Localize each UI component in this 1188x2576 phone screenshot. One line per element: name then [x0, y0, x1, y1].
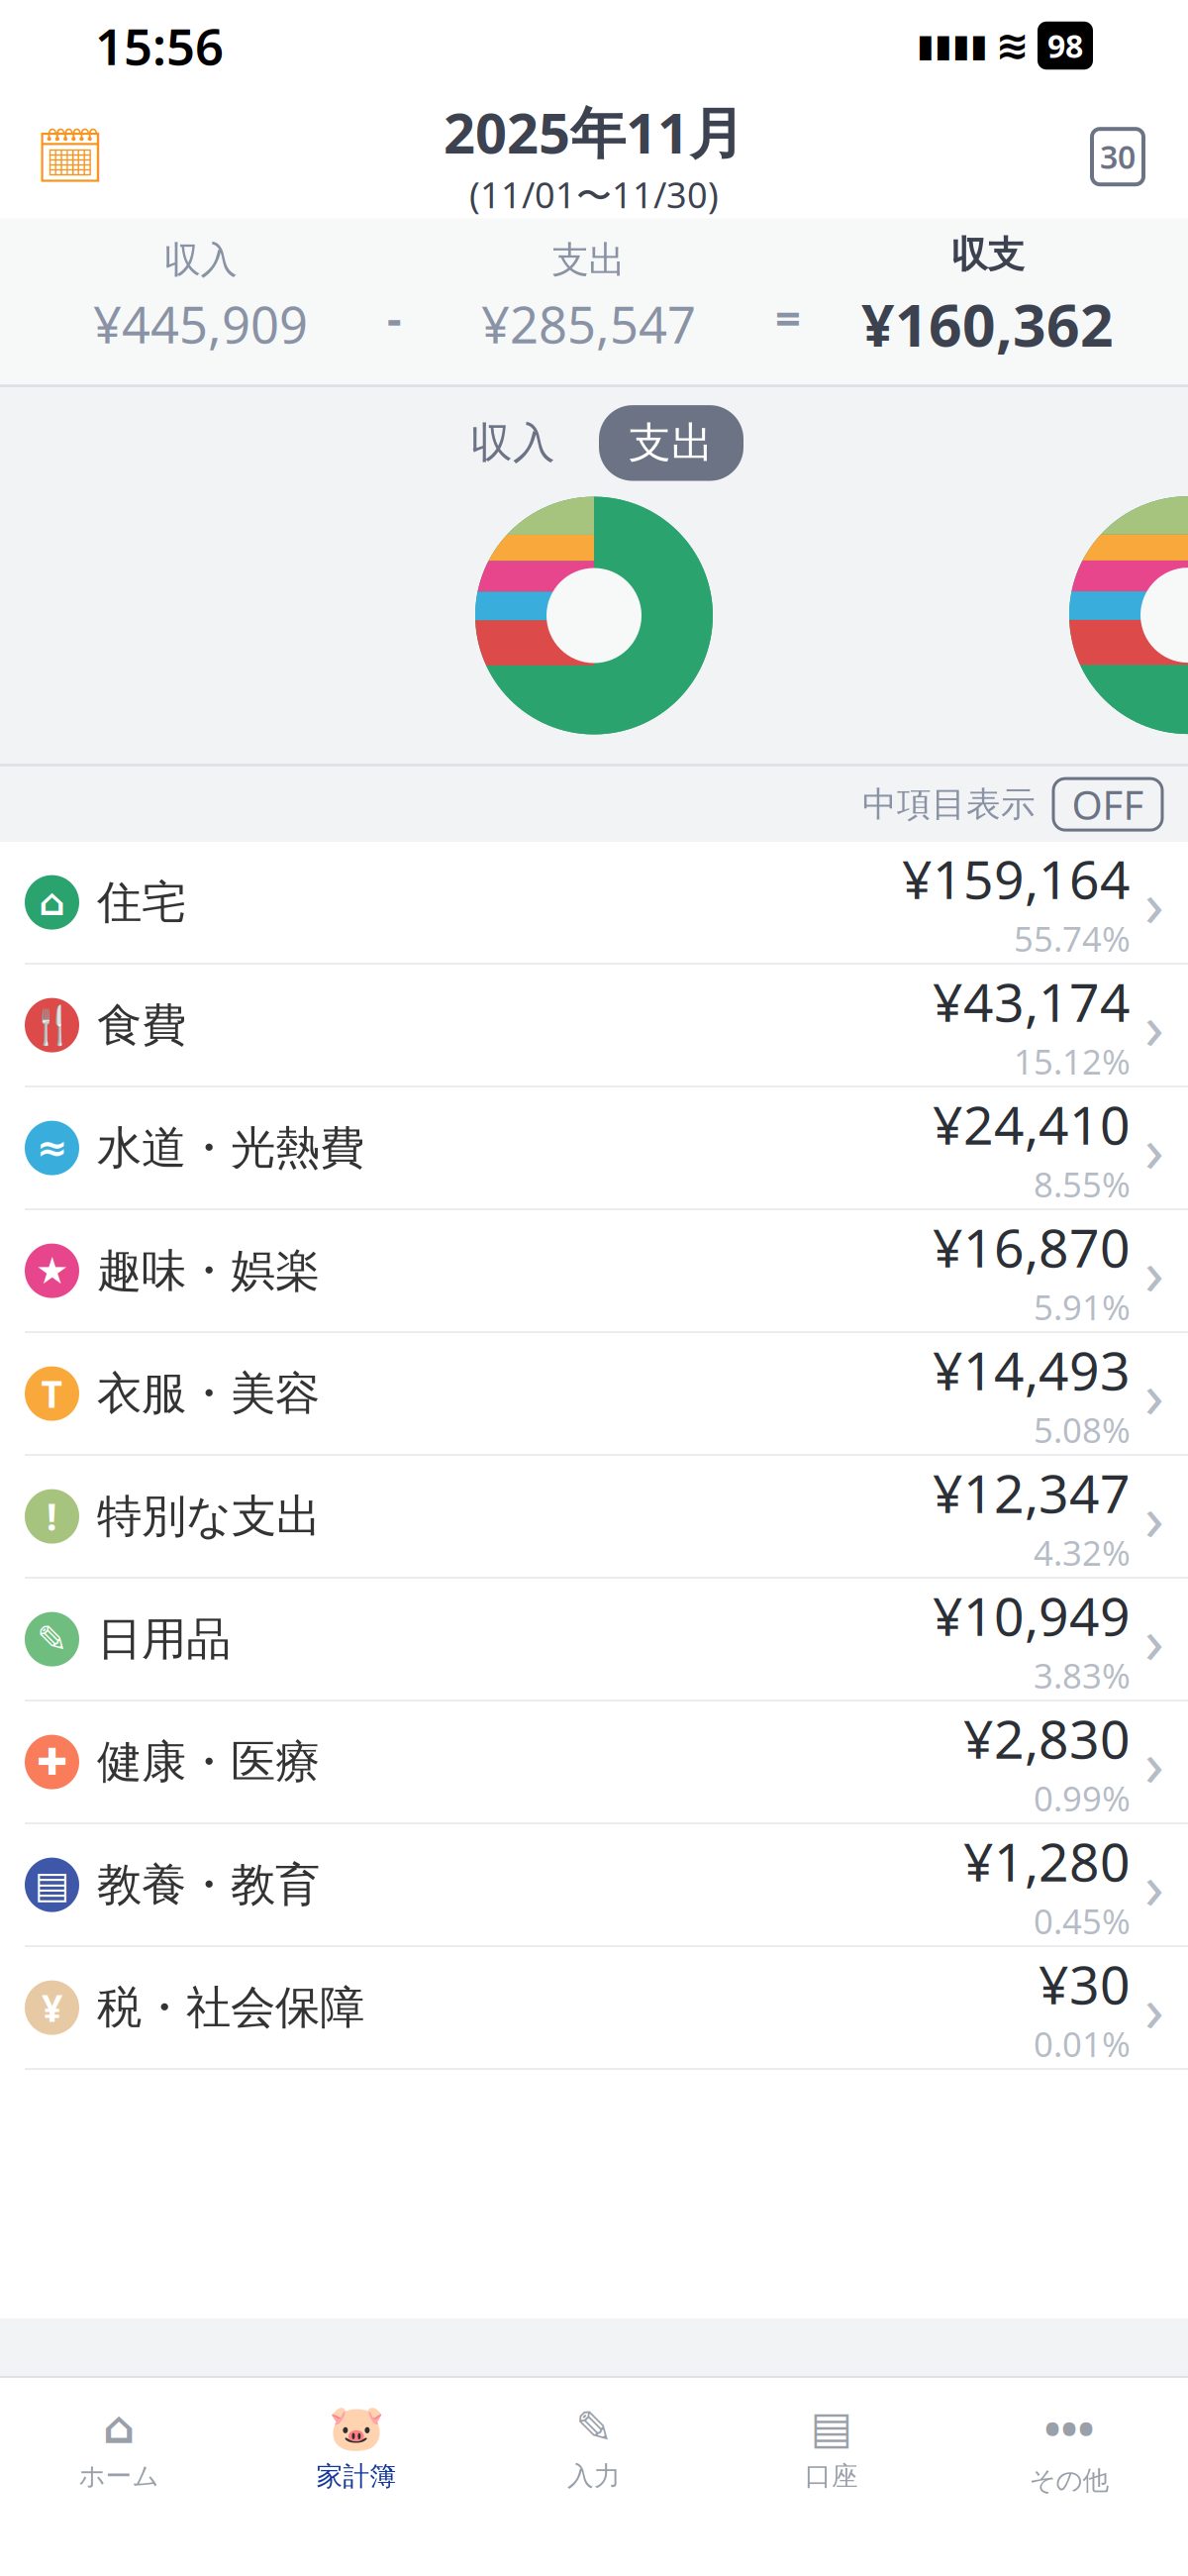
button[interactable]: ! — [0, 1456, 1188, 1579]
staticText: ▤ — [810, 2402, 853, 2453]
staticText: ¥16,870 — [933, 1212, 1131, 1282]
staticText: 4.32% — [1034, 1530, 1131, 1575]
staticText: ¥445,909 — [93, 291, 308, 357]
staticText: OFF — [1072, 778, 1144, 831]
staticText: ¥285,547 — [481, 291, 696, 357]
staticText: - — [387, 287, 402, 347]
button[interactable]: ⌂ — [0, 2392, 238, 2492]
staticText: 98 — [1047, 25, 1083, 67]
staticText: ¥43,174 — [933, 966, 1131, 1036]
staticText: ¥159,164 — [902, 844, 1131, 914]
staticText: 8.55% — [1034, 1161, 1131, 1207]
staticText: › — [1144, 1229, 1164, 1313]
staticText: 中項目表示 — [862, 783, 1036, 825]
staticText: › — [1144, 1106, 1164, 1190]
button[interactable]: ★ — [0, 1210, 1188, 1333]
staticText: ▮▮▮▮ — [917, 28, 988, 63]
staticText: ホーム — [79, 2460, 159, 2492]
staticText: ▤ — [35, 1864, 69, 1906]
staticText: 15.12% — [1014, 1038, 1131, 1084]
staticText: 食費 — [97, 998, 186, 1053]
button[interactable]: 収入 — [445, 405, 581, 481]
staticText: › — [1144, 1597, 1164, 1681]
staticText: 5.91% — [1034, 1284, 1131, 1330]
staticText: 健康・医療 — [97, 1734, 320, 1790]
staticText: 特別な支出 — [97, 1489, 321, 1544]
staticText: 収入 — [470, 417, 555, 469]
staticText: 支出 — [629, 417, 714, 469]
staticText: › — [1144, 860, 1164, 944]
staticText: ¥160,362 — [861, 285, 1114, 363]
staticText: 15:56 — [95, 12, 224, 79]
staticText: 趣味・娯楽 — [97, 1243, 320, 1298]
staticText: ¥1,280 — [963, 1826, 1131, 1896]
staticText: ≈ — [37, 1127, 67, 1169]
button[interactable]: ⌂ — [0, 842, 1188, 965]
staticText: 30 — [1100, 136, 1136, 178]
button[interactable]: 日別表示 — [1073, 122, 1162, 191]
staticText: ✎ — [575, 2402, 613, 2453]
staticText: 日用品 — [97, 1612, 231, 1667]
button[interactable]: 支出 — [599, 405, 743, 481]
button[interactable]: 🐷 — [238, 2392, 475, 2493]
staticText: ¥ — [42, 1983, 62, 2032]
staticText: ••• — [1044, 2398, 1094, 2457]
staticText: › — [1144, 983, 1164, 1067]
staticText: 3.83% — [1034, 1652, 1131, 1698]
staticText: = — [775, 287, 801, 347]
staticText: ¥30 — [1039, 1949, 1131, 2019]
staticText: ! — [47, 1492, 57, 1541]
staticText: › — [1144, 1474, 1164, 1558]
button[interactable]: ✎ — [475, 2392, 713, 2492]
staticText: › — [1144, 1720, 1164, 1804]
button[interactable]: ✎ — [0, 1579, 1188, 1702]
staticText: ✚ — [37, 1741, 67, 1783]
button[interactable]: 🍴 — [0, 965, 1188, 1088]
button[interactable]: ▤ — [0, 1824, 1188, 1947]
staticText: ¥10,949 — [933, 1580, 1131, 1650]
staticText: 55.74% — [1014, 916, 1131, 961]
staticText: ≋ — [996, 23, 1030, 68]
button[interactable]: 年月選択 — [26, 122, 115, 191]
staticText: 支出 — [552, 237, 625, 283]
staticText: › — [1144, 1351, 1164, 1436]
staticText: その他 — [1029, 2464, 1109, 2497]
staticText: 水道・光熱費 — [97, 1120, 364, 1176]
staticText: 0.01% — [1034, 2021, 1131, 2066]
staticText: › — [1144, 1843, 1164, 1927]
button[interactable]: ••• — [950, 2388, 1188, 2497]
button[interactable]: ▤ — [713, 2392, 950, 2492]
staticText: 税・社会保障 — [97, 1980, 364, 2035]
staticText: 0.45% — [1034, 1898, 1131, 1944]
staticText: ¥24,410 — [933, 1089, 1131, 1159]
staticText: 🍴 — [29, 1004, 75, 1046]
staticText: 口座 — [805, 2460, 858, 2492]
staticText: ¥2,830 — [963, 1703, 1131, 1773]
staticText: 入力 — [567, 2460, 621, 2492]
staticText: (11/01〜11/30) — [469, 171, 719, 218]
staticText: 教養・教育 — [97, 1857, 320, 1912]
button[interactable]: ¥ — [0, 1947, 1188, 2070]
staticText: 家計簿 — [316, 2460, 396, 2493]
button[interactable]: ✚ — [0, 1702, 1188, 1824]
staticText: › — [1144, 1966, 1164, 2050]
staticText: T — [41, 1369, 63, 1418]
staticText: ⌂ — [103, 2402, 135, 2453]
staticText: 0.99% — [1034, 1775, 1131, 1821]
button[interactable]: OFF — [1053, 779, 1162, 830]
staticText: 収支 — [951, 232, 1024, 278]
staticText: 衣服・美容 — [97, 1366, 320, 1421]
staticText: ✎ — [37, 1618, 67, 1660]
staticText: ⌂ — [39, 881, 65, 923]
staticText: 🗓 — [35, 125, 105, 188]
staticText: ★ — [36, 1250, 68, 1292]
staticText: ¥14,493 — [933, 1335, 1131, 1405]
staticText: 5.08% — [1034, 1407, 1131, 1452]
staticText: 🐷 — [329, 2402, 384, 2453]
button[interactable]: ≈ — [0, 1088, 1188, 1210]
staticText: 2025年11月 — [444, 95, 744, 169]
staticText: 収入 — [164, 237, 237, 283]
button[interactable]: T — [0, 1333, 1188, 1456]
staticText: ¥12,347 — [933, 1458, 1131, 1528]
staticText: 住宅 — [97, 875, 186, 930]
